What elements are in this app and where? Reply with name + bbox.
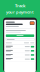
- button[interactable]: [4, 53, 36, 57]
- button[interactable]: [4, 57, 36, 61]
- staticText: Track: [15, 3, 25, 8]
- button[interactable]: [4, 49, 36, 53]
- button[interactable]: [4, 45, 36, 49]
- staticText: your payment: [6, 9, 34, 15]
- button[interactable]: [6, 34, 34, 37]
